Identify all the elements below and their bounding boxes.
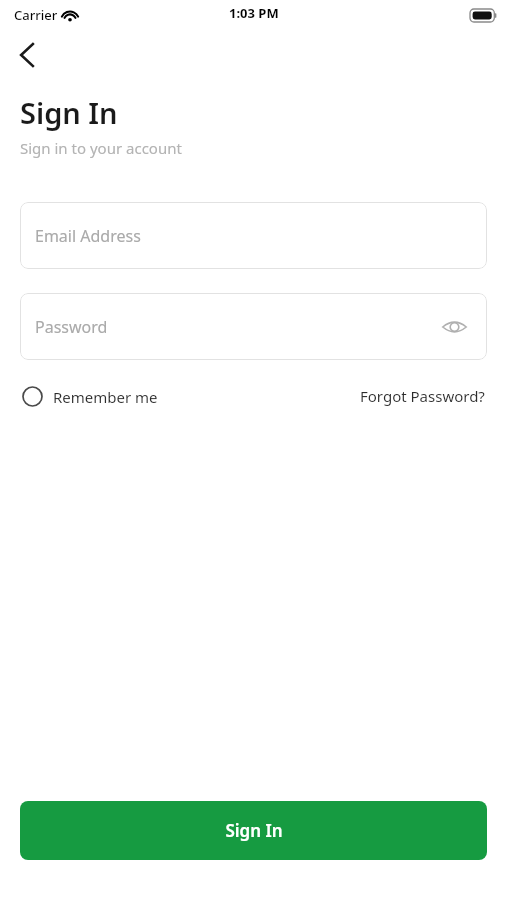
staticText: Sign In [20, 93, 118, 132]
button[interactable]: Remember me [20, 382, 160, 411]
button[interactable]: Sign In [20, 801, 487, 860]
button[interactable]: Back [8, 36, 46, 74]
staticText: 1:03 PM [229, 4, 279, 22]
staticText: Sign In [225, 819, 283, 842]
staticText: Carrier [14, 6, 58, 24]
staticText: Forgot Password? [360, 386, 485, 406]
button[interactable]: Show password [439, 312, 469, 342]
staticText: Password [35, 316, 108, 338]
button[interactable]: Password [20, 293, 487, 360]
button[interactable]: Email Address [20, 202, 487, 269]
staticText: Sign in to your account [20, 138, 182, 158]
staticText: Remember me [53, 387, 158, 407]
button[interactable]: Forgot Password? [358, 382, 487, 410]
staticText: Email Address [35, 225, 141, 247]
